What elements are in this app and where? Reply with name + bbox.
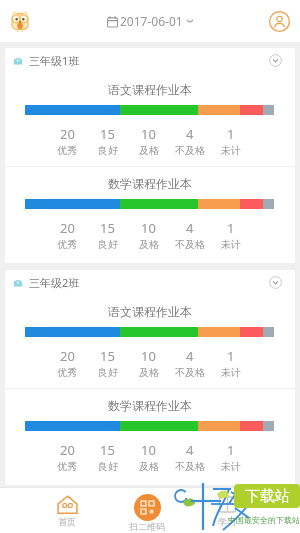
staticText: 扫二维码 bbox=[129, 521, 165, 532]
button[interactable]: 2017-06-01 bbox=[103, 9, 198, 33]
staticText: 不及格 bbox=[175, 144, 205, 157]
staticText: 4 bbox=[186, 219, 194, 237]
staticText: 20 bbox=[60, 125, 75, 143]
staticText: 1 bbox=[227, 125, 235, 143]
staticText: 优秀 bbox=[57, 144, 77, 157]
button[interactable]: Logo bbox=[9, 10, 31, 32]
staticText: 语文课程作业本 bbox=[5, 304, 295, 319]
other: Collapse bbox=[269, 54, 282, 67]
staticText: 10 bbox=[141, 125, 156, 143]
staticText: 优秀 bbox=[57, 366, 77, 379]
staticText: 1 bbox=[227, 347, 235, 365]
staticText: 不及格 bbox=[175, 238, 205, 251]
staticText: 20 bbox=[60, 219, 75, 237]
staticText: 1 bbox=[227, 441, 235, 459]
button[interactable]: 学习 bbox=[187, 487, 267, 533]
staticText: 15 bbox=[100, 441, 115, 459]
staticText: 良好 bbox=[98, 144, 118, 157]
staticText: 及格 bbox=[139, 144, 159, 157]
button[interactable]: 首页 bbox=[27, 487, 107, 533]
staticText: 15 bbox=[100, 125, 115, 143]
button[interactable]: 三年级1班 bbox=[5, 48, 295, 73]
staticText: 良好 bbox=[98, 238, 118, 251]
staticText: 不及格 bbox=[175, 366, 205, 379]
staticText: 10 bbox=[141, 441, 156, 459]
staticText: 4 bbox=[186, 125, 194, 143]
staticText: 未计 bbox=[221, 460, 241, 473]
staticText: 4 bbox=[186, 347, 194, 365]
staticText: 4 bbox=[186, 441, 194, 459]
staticText: 数学课程作业本 bbox=[5, 176, 295, 191]
button[interactable]: 扫二维码 bbox=[107, 487, 187, 533]
staticText: 良好 bbox=[98, 460, 118, 473]
button[interactable]: 三年级2班 bbox=[5, 270, 295, 295]
staticText: 中国最安全的下载站 bbox=[228, 515, 300, 525]
staticText: 及格 bbox=[139, 366, 159, 379]
staticText: 数学课程作业本 bbox=[5, 398, 295, 413]
staticText: 三年级2班 bbox=[29, 275, 80, 290]
staticText: 15 bbox=[100, 219, 115, 237]
staticText: 优秀 bbox=[57, 238, 77, 251]
staticText: 良好 bbox=[98, 366, 118, 379]
staticText: 2017-06-01 bbox=[120, 13, 183, 29]
staticText: 及格 bbox=[139, 238, 159, 251]
staticText: 未计 bbox=[221, 238, 241, 251]
staticText: 20 bbox=[60, 347, 75, 365]
staticText: 未计 bbox=[221, 144, 241, 157]
staticText: 1 bbox=[227, 219, 235, 237]
staticText: 15 bbox=[100, 347, 115, 365]
staticText: 10 bbox=[141, 347, 156, 365]
staticText: 不及格 bbox=[175, 460, 205, 473]
staticText: 未计 bbox=[221, 366, 241, 379]
staticText: 学习 bbox=[218, 516, 236, 527]
staticText: 语文课程作业本 bbox=[5, 82, 295, 97]
staticText: 首页 bbox=[58, 516, 76, 527]
other: Collapse bbox=[269, 276, 282, 289]
staticText: 及格 bbox=[139, 460, 159, 473]
staticText: 10 bbox=[141, 219, 156, 237]
button[interactable]: Account bbox=[269, 11, 290, 32]
staticText: 三年级1班 bbox=[29, 53, 80, 68]
staticText: 优秀 bbox=[57, 460, 77, 473]
staticText: 下载站 bbox=[245, 487, 290, 506]
staticText: 20 bbox=[60, 441, 75, 459]
